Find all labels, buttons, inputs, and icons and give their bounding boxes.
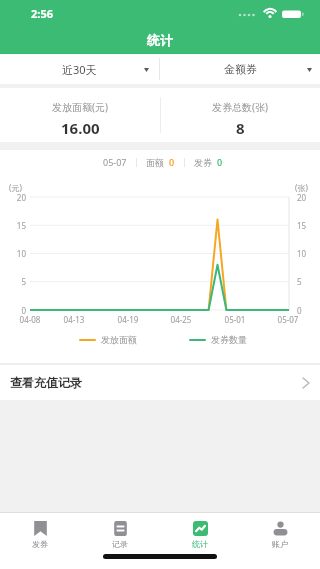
staticText: 04-19: [112, 314, 144, 325]
button[interactable]: 发券: [0, 513, 80, 569]
staticText: 统计: [192, 539, 208, 549]
staticText: 统计: [147, 32, 173, 48]
staticText: 05-01: [219, 314, 251, 325]
staticText: 04-08: [14, 314, 46, 325]
staticText: 10: [4, 248, 26, 259]
button[interactable]: 查看充值记录: [0, 365, 320, 400]
staticText: 近30天: [62, 62, 97, 77]
staticText: 发券: [194, 157, 212, 168]
staticText: 查看充值记录: [10, 375, 82, 390]
staticText: 记录: [112, 539, 128, 549]
staticText: 04-13: [58, 314, 90, 325]
staticText: 发券总数(张): [212, 100, 268, 114]
button[interactable]: 统计: [160, 513, 240, 569]
staticText: 15: [4, 220, 26, 231]
staticText: 0: [217, 156, 223, 168]
staticText: 20: [4, 192, 26, 203]
staticText: 20: [297, 192, 319, 203]
staticText: (元): [9, 182, 22, 193]
staticText: 05-07: [103, 156, 127, 168]
staticText: 发券数量: [211, 334, 247, 345]
staticText: (张): [295, 182, 308, 193]
staticText: 账户: [272, 539, 288, 549]
staticText: 2:56: [31, 6, 53, 21]
staticText: 发放面额: [101, 334, 137, 345]
button[interactable]: 近30天: [0, 54, 159, 84]
staticText: 05-07: [272, 314, 304, 325]
staticText: 8: [236, 118, 245, 138]
staticText: 0: [169, 156, 175, 168]
staticText: 0: [297, 305, 319, 316]
staticText: 04-25: [165, 314, 197, 325]
staticText: 金额券: [224, 62, 257, 76]
button[interactable]: 金额券: [160, 54, 320, 84]
button[interactable]: 账户: [240, 513, 320, 569]
staticText: 发放面额(元): [52, 100, 108, 114]
staticText: 发券: [32, 539, 48, 549]
button[interactable]: 记录: [80, 513, 160, 569]
staticText: 15: [297, 220, 319, 231]
staticText: 10: [297, 248, 319, 259]
staticText: 5: [297, 276, 319, 287]
staticText: 5: [4, 276, 26, 287]
staticText: 16.00: [61, 118, 100, 138]
staticText: 0: [4, 305, 26, 316]
staticText: 面额: [146, 157, 164, 168]
